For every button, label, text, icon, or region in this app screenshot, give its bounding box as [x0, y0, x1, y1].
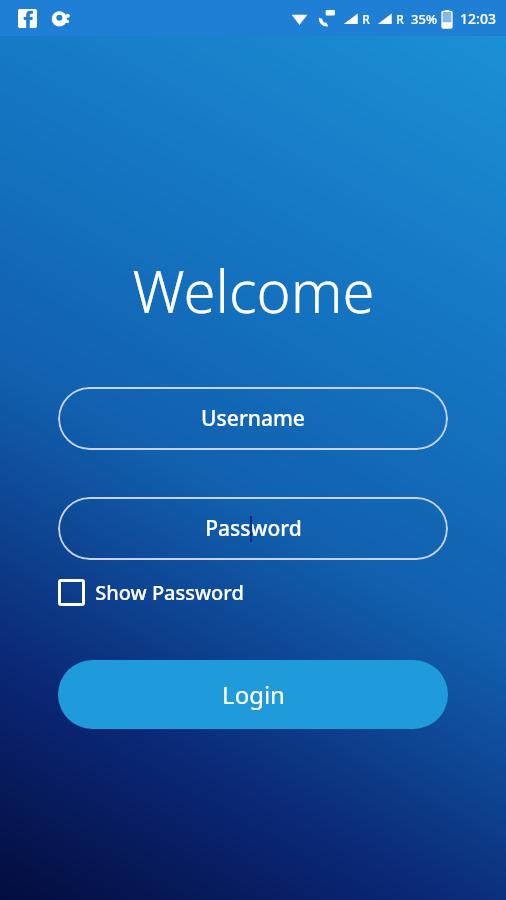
button[interactable]: Username [58, 387, 448, 450]
button[interactable]: Show Password [58, 579, 244, 606]
staticText: Welcome [132, 251, 375, 330]
staticText: Username [201, 404, 305, 433]
button[interactable]: Password [58, 497, 448, 560]
staticText: 12:03 [460, 9, 496, 28]
staticText: R [396, 11, 404, 27]
staticText: Show Password [95, 579, 244, 606]
staticText: Password [205, 514, 302, 543]
staticText: 35% [411, 10, 437, 28]
staticText: R [362, 11, 370, 27]
staticText: Login [222, 678, 285, 711]
button[interactable]: Login [58, 660, 448, 729]
